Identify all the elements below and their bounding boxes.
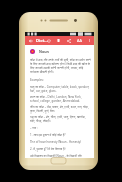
button[interactable]: Copy (55, 36, 62, 45)
staticText: – गाय : (30, 126, 38, 130)
staticText: जीव का कोश – भैंस, बकरा, शेर, हाथी, बन्द… (30, 105, 91, 113)
staticText: Noun (39, 49, 49, 54)
staticText: पशु का कोश – शेर, चीता, हाथी, भालू, हिरण… (30, 115, 91, 123)
staticText: Examples: (30, 78, 44, 82)
staticText: उसे विद्यालय का विद्यार्थी (Noun - के वि… (30, 154, 91, 158)
button[interactable]: More options (86, 36, 92, 45)
staticText: कोश में शब्द और उनके अर्थों की सूची, कोश… (30, 58, 91, 74)
button[interactable]: Favorite (45, 36, 52, 45)
staticText: Dict... (36, 38, 48, 44)
staticText: 1. आप इस दुकान में कोई कोश है? (30, 133, 66, 137)
staticText: The of have honesty (Noun - Honesty) (30, 140, 82, 144)
button[interactable]: Dict... (36, 36, 48, 45)
staticText: वस्तु का कोश – Computer, table, book, sp… (30, 85, 91, 93)
button[interactable]: Share (65, 36, 72, 45)
staticText: स्थान का कोश – Delhi, London, New York, … (30, 95, 91, 103)
staticText: AA (77, 38, 82, 43)
button[interactable]: Back (27, 36, 34, 45)
button[interactable]: Text size (76, 36, 83, 45)
staticText: 2. मैं, पुस्तक हूँ? (मैं मेरा किताब है) (30, 147, 66, 151)
